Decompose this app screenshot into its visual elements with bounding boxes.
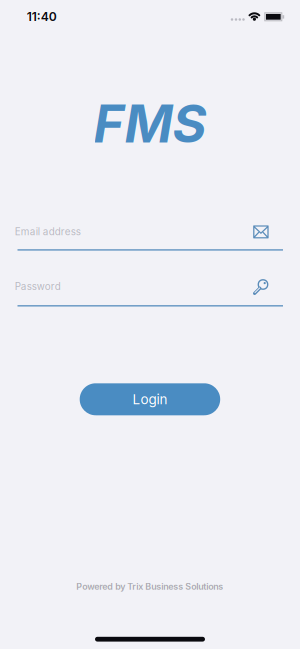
button[interactable]: Login [80,383,220,415]
staticText: Powered by Trix Business Solutions [76,581,223,592]
staticText: 11:40 [27,9,57,24]
staticText: Password [15,280,61,292]
staticText: Email address [15,226,81,237]
staticText: Login [132,391,167,407]
button[interactable]: Email address [0,220,300,254]
button[interactable]: Password [0,275,300,309]
staticText: FMS [93,92,206,155]
